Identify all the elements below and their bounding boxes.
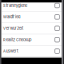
staticText: Auswert [3,49,18,53]
button[interactable]: Waldfried [0,11,64,22]
button[interactable]: Verwurzelt [0,23,64,34]
staticText: Strahlhygiene [3,3,27,8]
staticText: Verwurzelt [3,26,23,31]
staticText: Waldfried [3,14,20,19]
button[interactable]: Strahlhygiene [0,0,64,11]
staticText: Realitz Checkup [3,37,31,42]
button[interactable]: Realitz Checkup [0,34,64,45]
button[interactable]: Auswert [0,46,64,57]
